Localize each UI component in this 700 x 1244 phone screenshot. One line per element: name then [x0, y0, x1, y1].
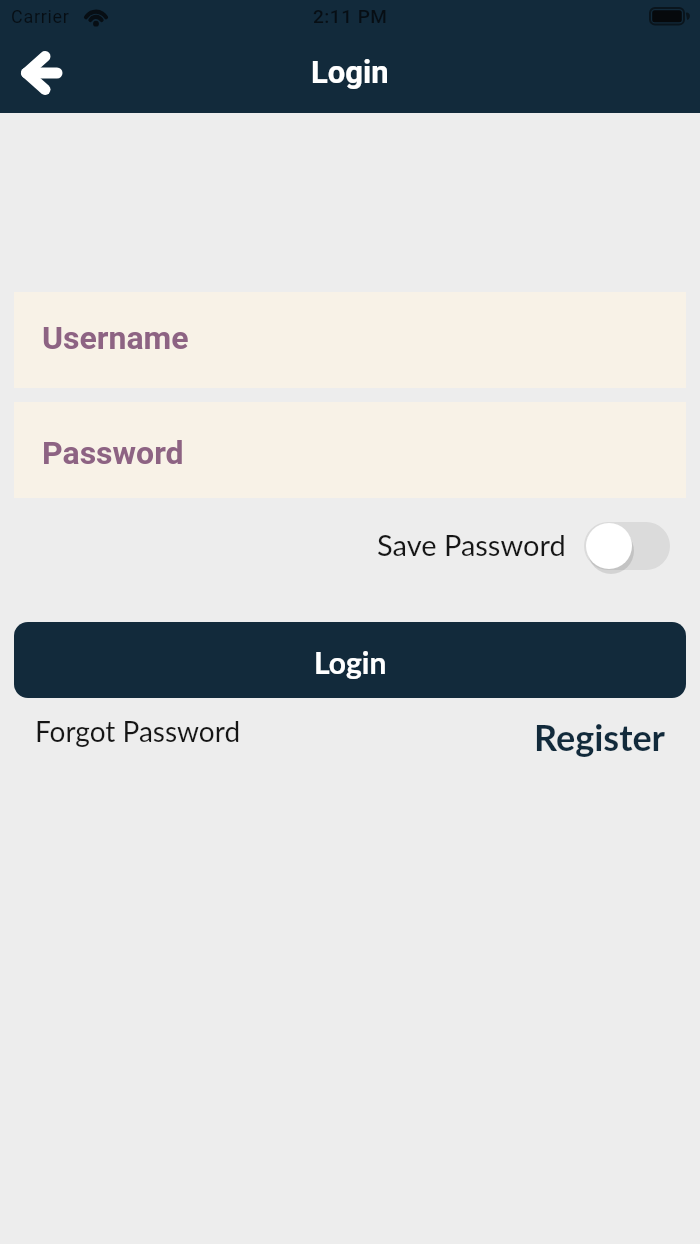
- staticText: Username: [42, 319, 189, 357]
- staticText: Password: [42, 434, 184, 472]
- staticText: Login: [311, 54, 389, 90]
- staticText: Save Password: [377, 527, 566, 562]
- staticText: 2:11 PM: [313, 5, 388, 27]
- staticText: Carrier: [11, 6, 70, 27]
- staticText: Login: [314, 644, 387, 680]
- staticText: Forgot Password: [35, 714, 241, 748]
- staticText: Register: [534, 715, 666, 758]
